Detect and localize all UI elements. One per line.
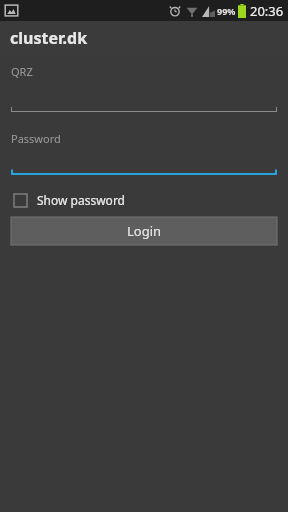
staticText: Login — [127, 222, 162, 240]
staticText: Show password — [37, 192, 125, 208]
button[interactable]: Login — [11, 217, 277, 245]
button[interactable]: Show password — [0, 187, 288, 213]
staticText: 20:36 — [250, 2, 284, 20]
button[interactable] — [11, 106, 277, 112]
button[interactable] — [11, 169, 277, 175]
staticText: Password — [11, 131, 61, 146]
staticText: QRZ — [11, 64, 33, 79]
staticText: 99% — [217, 5, 236, 17]
staticText: cluster.dk — [10, 27, 88, 49]
